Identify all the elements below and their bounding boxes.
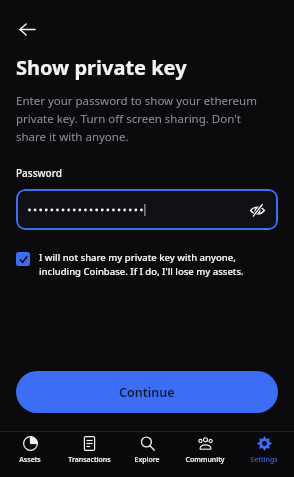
button[interactable]: Settings <box>236 436 292 465</box>
staticText: Community <box>185 455 225 465</box>
button[interactable]: Back <box>10 12 44 46</box>
button[interactable]: Explore <box>119 436 175 465</box>
button[interactable]: Community <box>177 436 233 465</box>
staticText: Continue <box>119 384 175 401</box>
staticText: Show private key <box>16 54 187 81</box>
staticText: Password <box>16 166 62 180</box>
button[interactable]: Assets <box>2 436 58 465</box>
staticText: Transactions <box>68 455 111 465</box>
staticText: Assets <box>19 455 41 465</box>
staticText: Settings <box>250 455 278 465</box>
staticText: I will not share my private key with any… <box>39 251 278 278</box>
button[interactable]: I will not share my private key with any… <box>16 251 278 278</box>
button[interactable]: Transactions <box>61 436 117 465</box>
staticText: Explore <box>134 455 160 465</box>
button[interactable]: Show password <box>242 195 272 225</box>
button[interactable]: Show password <box>16 189 278 230</box>
button[interactable]: Continue <box>16 371 278 413</box>
staticText: Enter your password to show your ethereu… <box>16 93 272 144</box>
